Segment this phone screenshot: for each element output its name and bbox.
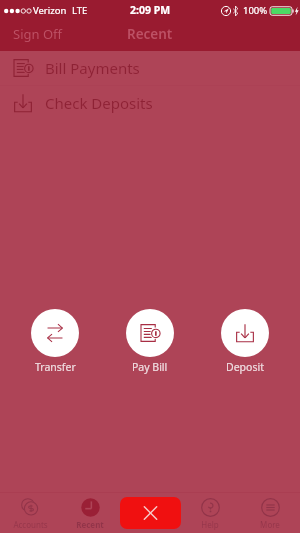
button[interactable]: Check Deposits (0, 86, 300, 120)
button[interactable]: Accounts (0, 493, 60, 533)
button[interactable] (126, 309, 174, 357)
staticText: LTE (72, 4, 88, 17)
staticText: 100% (243, 4, 268, 17)
button[interactable]: More (240, 493, 300, 533)
staticText: Verizon (33, 4, 67, 17)
staticText: Bill Payments (45, 58, 140, 78)
staticText: 2:09 PM (130, 3, 171, 17)
staticText: Recent (76, 519, 104, 530)
staticText: Check Deposits (45, 93, 153, 113)
button[interactable]: Sign Off (0, 19, 75, 49)
staticText: Recent (127, 25, 173, 43)
button[interactable]: Close (120, 497, 181, 529)
button[interactable]: Help (180, 493, 240, 533)
button[interactable] (31, 309, 79, 357)
staticText: More (260, 519, 280, 530)
staticText: Transfer (35, 360, 76, 374)
staticText: Deposit (226, 360, 264, 374)
staticText: Sign Off (13, 25, 62, 43)
button[interactable] (221, 309, 269, 357)
button[interactable]: Recent (60, 493, 120, 533)
button[interactable]: Bill Payments (0, 51, 300, 85)
staticText: Accounts (13, 519, 48, 530)
staticText: Pay Bill (132, 360, 168, 374)
staticText: Help (201, 519, 219, 530)
